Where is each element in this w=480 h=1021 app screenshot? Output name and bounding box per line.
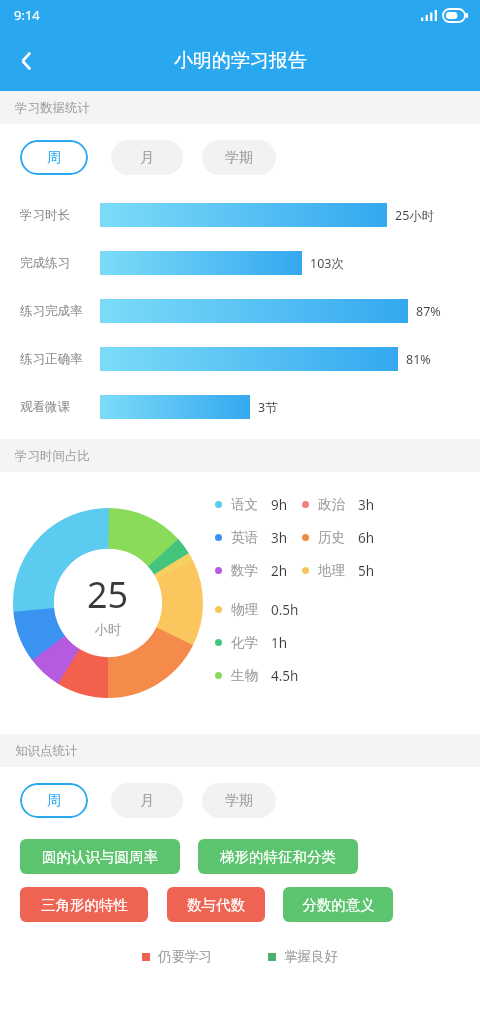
button[interactable]: 分数的意义	[283, 887, 393, 922]
staticText: 学期	[225, 792, 253, 810]
staticText: 小时	[95, 621, 121, 637]
button[interactable]: 掌握良好	[268, 948, 338, 965]
staticText: 103次	[310, 255, 344, 272]
staticText: 地理	[318, 562, 358, 579]
staticText: 周	[47, 792, 61, 810]
staticText: 25	[87, 570, 129, 619]
staticText: 英语	[231, 529, 271, 546]
button[interactable]: 地理	[302, 554, 375, 587]
staticText: 仍要学习	[158, 948, 212, 965]
staticText: 历史	[318, 529, 358, 546]
button[interactable]: 英语	[215, 521, 288, 554]
button[interactable]: 月	[111, 140, 183, 175]
button[interactable]: 数学	[215, 554, 288, 587]
staticText: 语文	[231, 496, 271, 513]
button[interactable]: 周	[20, 140, 88, 175]
staticText: 6h	[358, 529, 375, 547]
staticText: 学习时长	[20, 207, 100, 223]
button[interactable]: 圆的认识与圆周率	[20, 839, 180, 874]
staticText: 掌握良好	[284, 948, 338, 965]
staticText: 三角形的特性	[41, 896, 128, 914]
button[interactable]: 语文	[215, 488, 288, 521]
staticText: 学习时间占比	[15, 448, 90, 464]
staticText: 政治	[318, 496, 358, 513]
staticText: 数与代数	[187, 896, 245, 914]
staticText: 练习完成率	[20, 303, 100, 319]
staticText: 1h	[271, 634, 288, 652]
staticText: 完成练习	[20, 255, 100, 271]
staticText: 25小时	[395, 207, 435, 224]
button[interactable]: 生物	[215, 659, 299, 692]
button[interactable]: 仍要学习	[142, 948, 212, 965]
button[interactable]: 学期	[202, 783, 276, 818]
staticText: 圆的认识与圆周率	[42, 848, 158, 866]
staticText: 分数的意义	[302, 896, 375, 914]
staticText: 87%	[416, 303, 441, 320]
staticText: 物理	[231, 601, 271, 618]
button[interactable]: 化学	[215, 626, 288, 659]
button[interactable]: Back	[0, 34, 54, 88]
staticText: 梯形的特征和分类	[220, 848, 336, 866]
staticText: 3节	[258, 399, 278, 416]
staticText: 81%	[406, 351, 431, 368]
button[interactable]: 政治	[302, 488, 375, 521]
staticText: 练习正确率	[20, 351, 100, 367]
staticText: 化学	[231, 634, 271, 651]
staticText: 学习数据统计	[15, 100, 90, 116]
button[interactable]: 梯形的特征和分类	[198, 839, 358, 874]
staticText: 月	[140, 149, 154, 167]
staticText: 学期	[225, 149, 253, 167]
staticText: 观看微课	[20, 399, 100, 415]
button[interactable]: 历史	[302, 521, 375, 554]
staticText: 周	[47, 149, 61, 167]
button[interactable]: 月	[111, 783, 183, 818]
staticText: 生物	[231, 667, 271, 684]
button[interactable]: 学期	[202, 140, 276, 175]
button[interactable]: 三角形的特性	[20, 887, 148, 922]
staticText: 月	[140, 792, 154, 810]
staticText: 知识点统计	[15, 743, 78, 759]
button[interactable]: 数与代数	[167, 887, 265, 922]
staticText: 3h	[271, 529, 288, 547]
staticText: 4.5h	[271, 667, 299, 685]
button[interactable]: 周	[20, 783, 88, 818]
staticText: 2h	[271, 562, 288, 580]
staticText: 小明的学习报告	[174, 49, 307, 73]
staticText: 0.5h	[271, 601, 299, 619]
button[interactable]: 物理	[215, 593, 299, 626]
staticText: 数学	[231, 562, 271, 579]
staticText: 9:14	[14, 6, 40, 24]
staticText: 3h	[358, 496, 375, 514]
staticText: 9h	[271, 496, 288, 514]
staticText: 5h	[358, 562, 375, 580]
